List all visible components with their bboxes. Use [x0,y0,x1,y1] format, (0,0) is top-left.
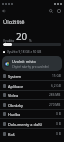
button[interactable]: System [0,71,64,81]
staticText: 6,2 GB [51,84,61,88]
staticText: Videa [8,93,19,98]
staticText: 0 B [56,122,61,126]
staticText: Úložiště [3,18,25,26]
button[interactable]: Dokumenty a další [0,119,64,129]
button[interactable]: Obrázky [0,100,64,110]
staticText: 15 GB [52,74,61,78]
staticText: 286 MB [49,93,61,97]
staticText: Uvolnit místo [12,59,36,64]
button[interactable]: Uvolnit místo [2,56,62,71]
staticText: 0 B [56,132,61,136]
staticText: 0 B [56,112,61,116]
staticText: Koš [8,132,15,137]
button[interactable]: Help [55,7,63,15]
button[interactable]: Search [47,7,55,15]
staticText: Dokumenty a další [8,122,42,127]
button[interactable]: Videa [0,90,64,100]
staticText: 20 [16,30,28,43]
staticText: Využito [3,38,15,42]
button[interactable]: Back [0,7,8,15]
staticText: Chytré návrhy pro uvolnění [12,65,49,69]
staticText: % [29,38,32,42]
button[interactable]: Hudba [0,109,64,119]
button[interactable]: Koš [0,129,64,139]
staticText: Obrázky [8,103,24,108]
staticText: Aplikace [8,84,24,89]
staticText: 270 MB [49,103,61,107]
button[interactable]: Aplikace [0,81,64,91]
staticText: Využito 9,18 GB z 50 GB [7,50,42,54]
staticText: System [8,74,22,79]
staticText: Hudba [8,112,21,117]
